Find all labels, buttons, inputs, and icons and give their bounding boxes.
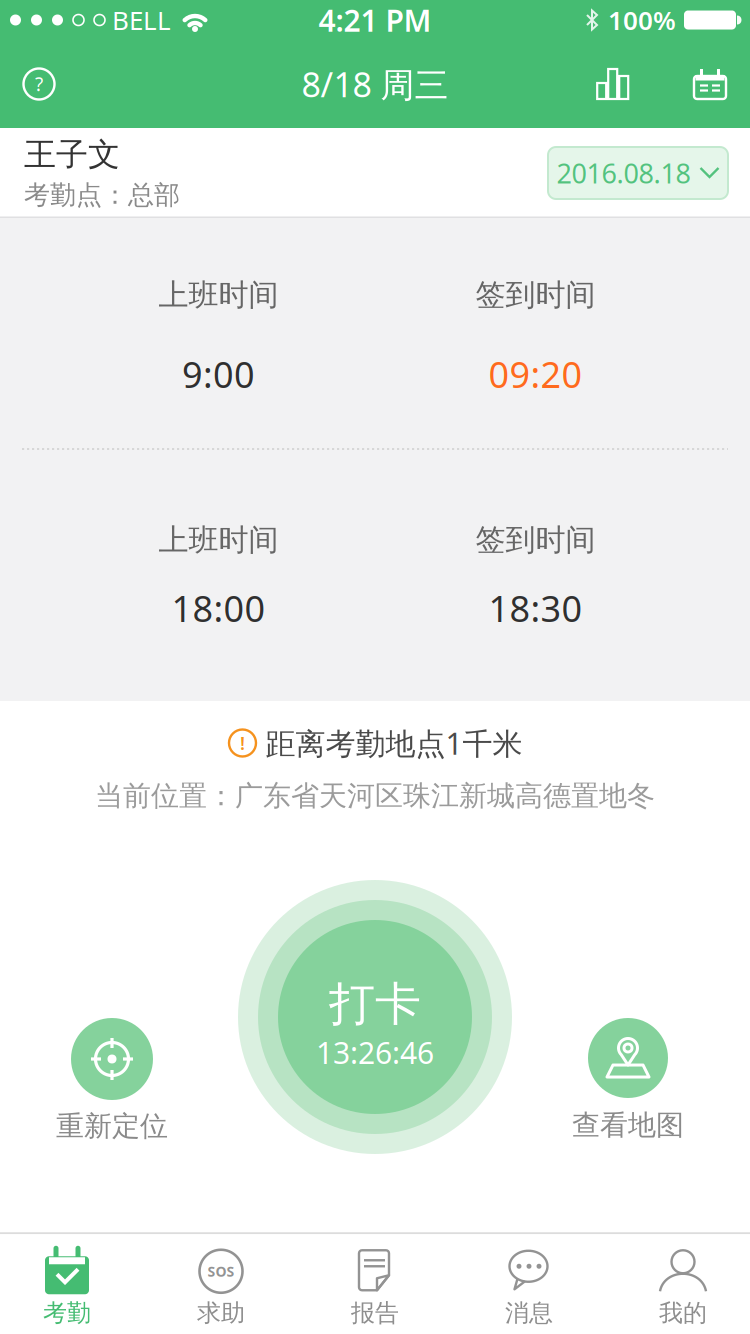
- button[interactable]: Statistics: [596, 68, 694, 100]
- staticText: 9:00: [182, 350, 255, 398]
- staticText: 查看地图: [572, 1108, 684, 1142]
- staticText: 4:21 PM: [318, 0, 431, 40]
- staticText: 8/18 周三: [301, 61, 448, 107]
- staticText: ?: [35, 71, 43, 97]
- button[interactable]: 查看地图: [572, 1018, 684, 1142]
- button[interactable]: 2016.08.18: [548, 147, 728, 199]
- staticText: 打卡: [329, 976, 421, 1032]
- button[interactable]: Help: [0, 67, 56, 101]
- staticText: 13:26:46: [316, 1032, 434, 1072]
- staticText: 报告: [351, 1298, 399, 1328]
- button[interactable]: Calendar: [694, 69, 750, 99]
- staticText: 上班时间: [158, 522, 278, 558]
- staticText: !: [240, 731, 245, 755]
- button[interactable]: 我的: [606, 1234, 750, 1334]
- staticText: 签到时间: [475, 277, 595, 313]
- staticText: 王子文: [24, 135, 120, 174]
- staticText: 我的: [659, 1298, 707, 1328]
- staticText: 考勤点：总部: [24, 179, 180, 211]
- button[interactable]: 重新定位: [56, 1018, 168, 1143]
- staticText: 上班时间: [158, 277, 278, 313]
- button[interactable]: 消息: [452, 1234, 606, 1334]
- staticText: BELL: [112, 3, 171, 37]
- staticText: 距离考勤地点1千米: [265, 723, 522, 763]
- staticText: 100%: [608, 3, 676, 37]
- staticText: 消息: [505, 1298, 553, 1328]
- button[interactable]: SOS: [144, 1234, 298, 1334]
- button[interactable]: 报告: [298, 1234, 452, 1334]
- button[interactable]: 打卡: [238, 880, 512, 1154]
- staticText: 09:20: [488, 350, 582, 398]
- staticText: 考勤: [43, 1298, 91, 1328]
- staticText: 2016.08.18: [556, 155, 690, 191]
- staticText: 求助: [197, 1298, 245, 1328]
- staticText: 当前位置：广东省天河区珠江新城高德置地冬: [95, 779, 655, 813]
- staticText: 18:30: [488, 584, 582, 632]
- staticText: SOS: [207, 1262, 234, 1281]
- button[interactable]: 考勤: [0, 1234, 144, 1334]
- staticText: 18:00: [171, 584, 265, 632]
- staticText: 重新定位: [56, 1109, 168, 1143]
- staticText: 签到时间: [475, 522, 595, 558]
